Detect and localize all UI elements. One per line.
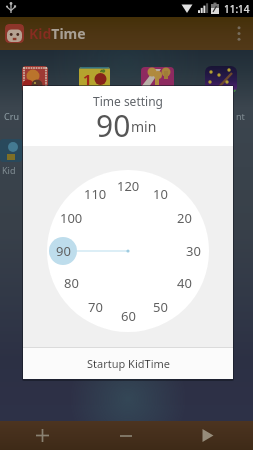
staticText: Kid	[2, 164, 16, 176]
staticText: 11:14	[224, 2, 250, 16]
staticText: 90	[56, 242, 71, 260]
button[interactable]	[106, 421, 146, 450]
staticText: 20	[177, 209, 192, 227]
staticText: 60	[121, 307, 136, 325]
staticText: 40	[177, 274, 192, 292]
staticText: 120	[117, 177, 140, 195]
staticText: 30	[186, 242, 201, 260]
staticText: 110	[84, 185, 107, 203]
staticText: 10	[153, 185, 168, 203]
staticText: KidTime	[29, 24, 86, 43]
button[interactable]	[225, 17, 253, 50]
staticText: nt	[236, 110, 245, 122]
button[interactable]	[188, 421, 228, 450]
button[interactable]	[22, 421, 62, 450]
staticText: 1	[83, 69, 92, 89]
staticText: min	[131, 117, 157, 136]
staticText: Time setting	[93, 93, 163, 109]
staticText: 100	[60, 209, 83, 227]
staticText: Cru	[4, 110, 19, 122]
staticText: 90	[96, 105, 131, 142]
staticText: Startup KidTime	[87, 356, 170, 371]
staticText: 70	[88, 298, 103, 316]
button[interactable]: Startup KidTime	[23, 348, 233, 379]
staticText: 50	[153, 298, 168, 316]
staticText: 80	[64, 274, 79, 292]
